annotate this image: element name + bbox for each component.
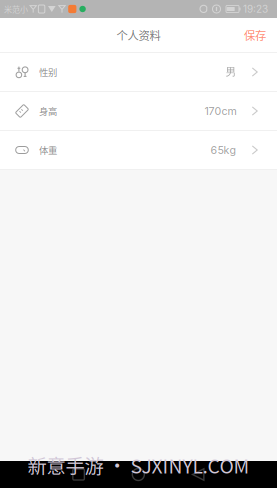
staticText: 性别 — [39, 65, 57, 79]
button[interactable]: Back — [180, 461, 216, 488]
staticText: 19:23 — [243, 3, 268, 15]
staticText: 170cm — [205, 104, 237, 117]
staticText: 个人资料 — [116, 27, 160, 43]
staticText: 65kg — [211, 143, 237, 156]
button[interactable]: 身高 — [0, 92, 277, 130]
staticText: 身高 — [39, 104, 57, 118]
button[interactable]: Recents — [61, 461, 96, 488]
staticText: 体重 — [39, 143, 57, 157]
button[interactable]: 性别 — [0, 53, 277, 91]
staticText: 保存 — [244, 27, 266, 43]
button[interactable]: 体重 — [0, 131, 277, 169]
button[interactable]: Home — [120, 461, 156, 488]
staticText: 男 — [226, 65, 237, 79]
staticText: 米范小 — [4, 3, 28, 15]
button[interactable]: 保存 — [235, 18, 277, 52]
staticText: 新意手游 · SJXINYL.COM — [27, 451, 249, 479]
